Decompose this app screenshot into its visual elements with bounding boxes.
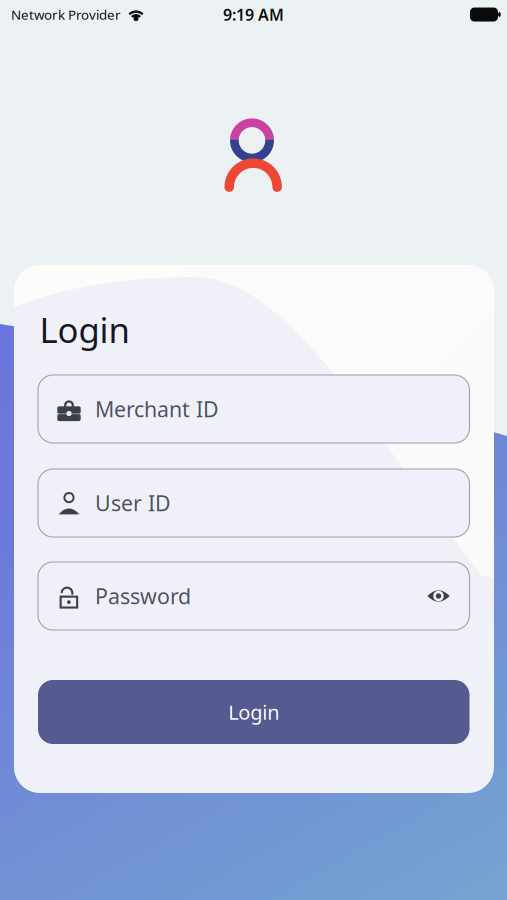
button[interactable]: Login — [38, 680, 469, 744]
button[interactable]: Merchant ID — [38, 375, 469, 443]
staticText: User ID — [95, 489, 171, 517]
staticText: 9:19 AM — [223, 4, 284, 25]
button[interactable]: User ID — [38, 469, 469, 537]
staticText: Login — [228, 699, 279, 725]
staticText: Login — [40, 306, 130, 352]
staticText: Password — [95, 582, 191, 610]
staticText: Merchant ID — [95, 395, 219, 423]
button[interactable]: Password — [38, 562, 469, 630]
staticText: Network Provider — [11, 6, 121, 23]
